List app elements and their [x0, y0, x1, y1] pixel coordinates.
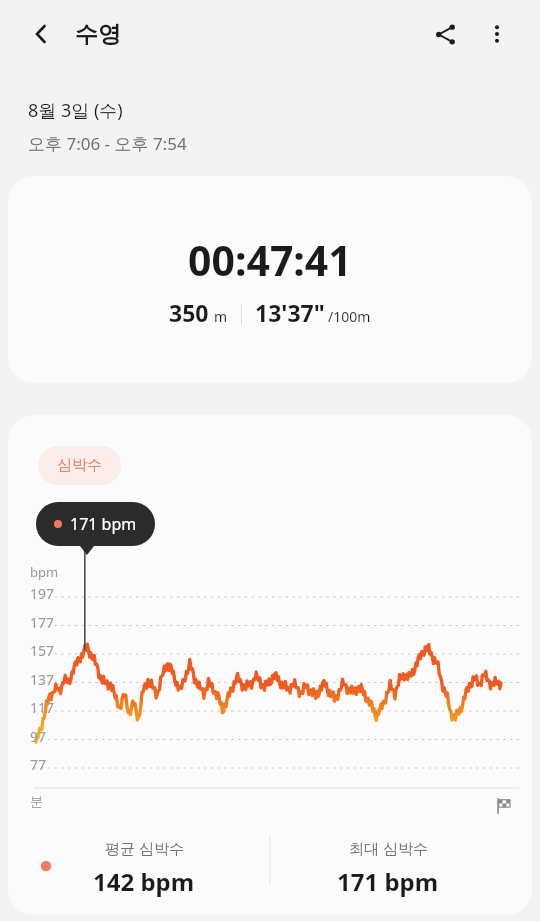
- staticText: 00:47:41: [188, 232, 352, 288]
- staticText: 137: [30, 670, 55, 689]
- staticText: 171 bpm: [337, 865, 439, 898]
- staticText: 오후 7:06 - 오후 7:54: [28, 132, 187, 155]
- button[interactable]: 171 bpm: [36, 502, 155, 546]
- staticText: m: [214, 307, 228, 326]
- staticText: 77: [30, 755, 47, 774]
- staticText: 분: [30, 793, 43, 809]
- staticText: /100m: [328, 307, 371, 326]
- staticText: 177: [30, 613, 55, 632]
- staticText: 8월 3일 (수): [28, 98, 123, 123]
- staticText: bpm: [30, 563, 59, 581]
- staticText: 171 bpm: [70, 513, 137, 535]
- staticText: 117: [30, 698, 55, 717]
- button[interactable]: 00:47:41: [8, 176, 532, 383]
- staticText: 197: [30, 584, 55, 603]
- staticText: 157: [30, 641, 55, 660]
- staticText: 심박수: [57, 456, 102, 475]
- staticText: 142 bpm: [93, 865, 195, 898]
- staticText: 350: [169, 297, 209, 328]
- staticText: 최대 심박수: [349, 838, 428, 858]
- staticText: 13'37": [255, 297, 325, 328]
- button[interactable]: Share: [422, 11, 468, 57]
- button[interactable]: More options: [474, 11, 520, 57]
- button[interactable]: Back: [18, 11, 64, 57]
- staticText: 평균 심박수: [105, 838, 184, 858]
- staticText: 97: [30, 727, 47, 746]
- button[interactable]: 심박수: [38, 446, 121, 485]
- staticText: 수영: [75, 20, 121, 49]
- button[interactable]: Laps: [488, 789, 520, 821]
